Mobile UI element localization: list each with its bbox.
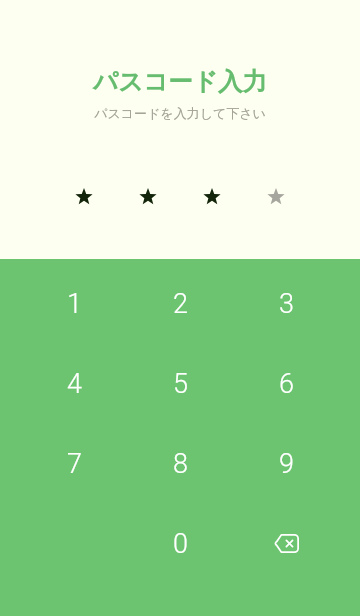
button[interactable]: 6	[233, 344, 339, 424]
staticText: 2	[173, 288, 188, 320]
button[interactable]: 2	[127, 264, 233, 344]
staticText: パスコード入力	[0, 66, 360, 97]
staticText: 0	[173, 528, 188, 560]
staticText: 9	[279, 448, 294, 480]
staticText: 3	[279, 288, 294, 320]
staticText: 7	[67, 448, 82, 480]
button[interactable]: Delete last digit	[233, 504, 339, 584]
staticText: 1	[67, 288, 82, 320]
staticText: 6	[279, 368, 294, 400]
button[interactable]: 7	[21, 424, 127, 504]
button[interactable]: 9	[233, 424, 339, 504]
staticText: 4	[67, 368, 82, 400]
button[interactable]: 0	[127, 504, 233, 584]
staticText: 5	[173, 368, 188, 400]
button[interactable]: 5	[127, 344, 233, 424]
button[interactable]: 8	[127, 424, 233, 504]
button[interactable]: 3	[233, 264, 339, 344]
staticText: パスコードを入力して下さい	[0, 105, 360, 121]
staticText: 8	[173, 448, 188, 480]
button[interactable]: 4	[21, 344, 127, 424]
button[interactable]: 1	[21, 264, 127, 344]
